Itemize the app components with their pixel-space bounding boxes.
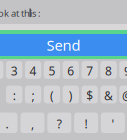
- staticText: :: [13, 87, 16, 103]
- staticText: @: [122, 87, 127, 103]
- staticText: Send: [46, 35, 80, 55]
- staticText: 7: [86, 63, 93, 79]
- staticText: 9: [124, 63, 127, 79]
- staticText: .: [5, 116, 8, 132]
- button[interactable]: 7: [82, 61, 98, 79]
- button[interactable]: ?: [47, 112, 71, 133]
- button[interactable]: 9: [119, 61, 127, 79]
- button[interactable]: 2: [0, 61, 3, 79]
- staticText: 4: [30, 63, 37, 79]
- button[interactable]: 3: [6, 61, 22, 79]
- staticText: ;: [32, 87, 35, 103]
- button[interactable]: @: [119, 86, 127, 103]
- button[interactable]: ,: [20, 112, 44, 133]
- button[interactable]: :: [6, 86, 22, 103]
- staticText: ': [111, 116, 114, 132]
- button[interactable]: (: [44, 86, 60, 103]
- staticText: 5: [48, 63, 55, 79]
- staticText: ok at this :: [0, 7, 41, 19]
- button[interactable]: ': [101, 112, 125, 133]
- staticText: !: [85, 116, 88, 132]
- button[interactable]: ;: [25, 86, 41, 103]
- staticText: $: [86, 87, 93, 103]
- button[interactable]: 5: [44, 61, 60, 79]
- staticText: ): [69, 87, 73, 103]
- button[interactable]: Send: [0, 34, 127, 56]
- button[interactable]: 6: [63, 61, 79, 79]
- staticText: 3: [11, 63, 18, 79]
- staticText: ,: [31, 116, 34, 132]
- staticText: ?: [57, 116, 62, 132]
- staticText: &: [104, 87, 113, 103]
- staticText: (: [50, 87, 54, 103]
- button[interactable]: 4: [25, 61, 41, 79]
- button[interactable]: &: [100, 86, 117, 103]
- button[interactable]: 8: [100, 61, 117, 79]
- button[interactable]: !: [74, 112, 98, 133]
- staticText: 8: [105, 63, 112, 79]
- button[interactable]: $: [82, 86, 98, 103]
- button[interactable]: .: [0, 112, 17, 133]
- staticText: 6: [67, 63, 74, 79]
- button[interactable]: ): [63, 86, 79, 103]
